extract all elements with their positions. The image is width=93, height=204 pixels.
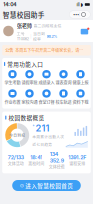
button[interactable]: 关闭	[80, 11, 87, 18]
staticText: 18:41	[30, 154, 42, 160]
staticText: 健康上报	[72, 80, 88, 86]
staticText: 校车轨迹	[55, 99, 71, 105]
button[interactable]: 请假审批	[21, 70, 38, 86]
staticText: 98.2%	[46, 34, 57, 39]
staticText: 离校时间	[28, 161, 44, 167]
staticText: 资料下载	[72, 99, 88, 105]
button[interactable]: 健康上报	[72, 70, 89, 86]
staticText: 文体经费	[49, 164, 65, 170]
staticText: 文体活动	[8, 161, 24, 167]
staticText: 今日到校	[9, 132, 25, 138]
staticText: 本周累计出勤人次	[32, 134, 64, 139]
staticText: 本周五下午召开高二年级家长会，请各位班主任…	[15, 47, 86, 53]
staticText: 食堂订餐	[38, 99, 54, 105]
button[interactable]: 家校沟通	[21, 89, 38, 105]
staticText: 成绩录入	[38, 80, 54, 86]
button[interactable]: 食堂订餐	[38, 89, 55, 105]
staticText: 智慧校园助手	[3, 10, 45, 19]
staticText: 134 352.9	[50, 151, 64, 164]
staticText: 请假审批	[21, 80, 37, 86]
staticText: 高二(3)班班主任	[33, 23, 61, 28]
staticText: ıll	[76, 2, 79, 7]
staticText: 211	[36, 123, 50, 134]
button[interactable]: 课表查询	[55, 70, 72, 86]
button[interactable]: 校车轨迹	[55, 89, 72, 105]
staticText: 家校沟通	[21, 99, 37, 105]
staticText: 当日到校率	[33, 31, 45, 42]
button[interactable]: 消息通知	[80, 27, 90, 35]
staticText: 课表查询	[55, 80, 71, 86]
button[interactable]: 学生考勤	[4, 70, 21, 86]
staticText: +	[32, 123, 35, 127]
staticText: 学生考勤	[4, 80, 20, 86]
staticText: •••	[73, 12, 79, 17]
button[interactable]: 成绩录入	[38, 70, 55, 86]
staticText: 公告	[5, 47, 13, 53]
staticText: 校园数据概览	[8, 113, 44, 122]
button[interactable]: ⊙	[12, 180, 81, 191]
button[interactable]: 公告	[2, 45, 91, 55]
staticText: 1391.2F	[68, 154, 86, 160]
staticText: 工号 T10082	[17, 32, 29, 41]
staticText: 14:04	[3, 1, 16, 7]
staticText: 进入智慧校园首页	[25, 181, 73, 189]
staticText: 课程安排	[69, 161, 85, 167]
staticText: ⊙	[20, 183, 24, 188]
staticText: 72/133	[8, 154, 24, 160]
button[interactable]: 资料下载	[72, 89, 89, 105]
staticText: ◗	[81, 2, 84, 7]
staticText: 近七日趋势	[32, 142, 52, 147]
button[interactable]: 更多	[73, 11, 80, 18]
button[interactable]: 作业布置	[4, 89, 21, 105]
staticText: 张老师	[17, 22, 32, 29]
staticText: 作业布置	[4, 99, 20, 105]
staticText: 常用功能入口	[7, 60, 43, 68]
